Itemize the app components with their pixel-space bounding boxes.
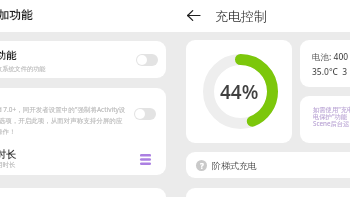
button[interactable]: List options — [139, 153, 151, 165]
staticText: 用时长 — [0, 161, 16, 169]
staticText: id 7.0+，同开发者设置中的"强制将Activity设 "选项，开启此项，从… — [0, 105, 126, 136]
staticText: 35.0°C 3 — [312, 66, 348, 78]
staticText: 如需使用"充电 — [313, 105, 350, 114]
staticText: 加功能 — [0, 8, 33, 22]
staticText: 改系统文件的功能 — [0, 65, 46, 73]
staticText: 功能 — [0, 49, 16, 62]
button[interactable]: Back — [183, 5, 203, 25]
staticText: 阶梯式充电 — [212, 160, 257, 171]
staticText: 电保护"功能， — [313, 112, 350, 121]
button[interactable]: Toggle — [136, 54, 158, 66]
button[interactable]: 功能 — [0, 41, 166, 78]
staticText: 44% — [220, 79, 259, 105]
button[interactable]: ? — [186, 152, 350, 178]
staticText: 电池: 400 — [312, 51, 349, 63]
staticText: 充电控制 — [215, 8, 267, 24]
button[interactable]: Toggle — [134, 108, 156, 120]
staticText: Scene后台运 — [313, 119, 350, 128]
staticText: 时长 — [0, 148, 16, 161]
staticText: ? — [200, 160, 204, 171]
